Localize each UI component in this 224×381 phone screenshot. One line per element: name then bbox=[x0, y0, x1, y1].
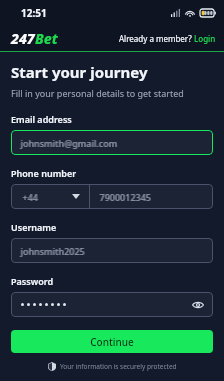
staticText: 247 bbox=[11, 29, 35, 48]
staticText: Email address bbox=[11, 113, 72, 125]
staticText: Continue bbox=[90, 335, 134, 349]
staticText: Password bbox=[11, 275, 54, 287]
button[interactable]: +44 bbox=[11, 184, 89, 209]
staticText: +44 bbox=[22, 191, 38, 203]
staticText: Username bbox=[11, 221, 57, 233]
staticText: Your information is securely protected bbox=[60, 362, 177, 371]
staticText: johnsmith2025 bbox=[21, 245, 86, 257]
staticText: Start your journey bbox=[11, 62, 148, 82]
staticText: johnsmith@gmail.com bbox=[21, 137, 118, 149]
button[interactable]: Show password bbox=[11, 292, 213, 317]
staticText: 12:51 bbox=[21, 6, 47, 20]
staticText: Bet bbox=[35, 29, 58, 48]
button[interactable]: johnsmith@gmail.com bbox=[11, 130, 213, 155]
staticText: Already a member? bbox=[119, 33, 194, 44]
staticText: 7900012345 bbox=[100, 191, 152, 203]
button[interactable]: Already a member? bbox=[119, 33, 216, 44]
button[interactable]: 7900012345 bbox=[90, 184, 213, 209]
staticText: Phone number bbox=[11, 167, 77, 179]
button[interactable]: Continue bbox=[11, 330, 213, 353]
staticText: johnsmith2025 bbox=[20, 245, 85, 257]
staticText: Fill in your personal details to get sta… bbox=[11, 87, 184, 99]
staticText: johnsmith@gmail.com bbox=[20, 137, 117, 149]
staticText: 7900012345 bbox=[99, 191, 151, 203]
staticText: Login bbox=[194, 33, 216, 44]
staticText: +44 bbox=[23, 191, 39, 203]
button[interactable]: johnsmith2025 bbox=[11, 238, 213, 263]
button[interactable]: Show password bbox=[191, 298, 205, 312]
